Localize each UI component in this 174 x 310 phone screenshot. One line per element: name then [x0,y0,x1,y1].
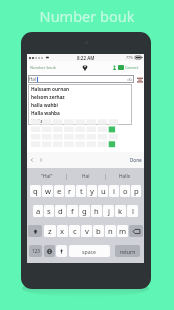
button[interactable]: d [55,205,66,217]
button[interactable]: f [67,205,78,217]
button[interactable]: h [91,205,102,217]
staticText: Hai [82,173,90,180]
button[interactable]: k [115,205,126,217]
button[interactable]: Connect [112,65,139,70]
button[interactable]: n [105,225,116,237]
staticText: j [108,206,110,216]
button[interactable]: space [69,245,110,257]
button[interactable]: Backspace [129,225,143,237]
staticText: v [85,226,89,236]
staticText: g [82,206,87,216]
button[interactable]: Done [130,157,142,163]
staticText: w [45,186,51,196]
button[interactable]: Shift [28,225,42,237]
button[interactable]: s [44,205,54,217]
button[interactable]: o [120,185,130,197]
button[interactable]: x [57,225,68,237]
staticText: a [36,206,41,216]
staticText: Halla wahba [31,110,60,116]
staticText: "Hal" [41,173,53,180]
staticText: p [134,186,139,196]
staticText: i [113,186,115,196]
staticText: l [132,206,134,216]
button[interactable]: Hal [28,75,134,83]
staticText: 123 [32,248,40,254]
staticText: «X» [127,77,133,82]
staticText: f [71,206,74,216]
staticText: Hal [29,76,37,82]
staticText: k [118,206,123,216]
button[interactable]: i [109,185,119,197]
staticText: b [96,226,101,236]
button[interactable]: t [76,185,86,197]
button[interactable]: j [103,205,114,217]
button[interactable]: helsom zerhaz [28,93,132,101]
staticText: return [120,248,136,255]
button[interactable]: return [115,245,140,257]
button[interactable]: z [44,225,56,237]
button[interactable]: Hai [67,168,105,185]
staticText: e [57,186,62,196]
button[interactable]: Next [38,157,44,163]
staticText: t [80,186,83,196]
staticText: helsom zerhaz [31,94,65,100]
staticText: q [33,186,38,196]
staticText: r [68,186,72,196]
staticText: y [90,186,94,196]
button[interactable]: Halla wahba [28,109,132,117]
button[interactable]: u [98,185,108,197]
button[interactable]: q [30,185,41,197]
staticText: m [119,226,127,236]
staticText: u [101,186,106,196]
button[interactable]: Dictate [56,245,67,257]
button[interactable]: e [54,185,64,197]
button[interactable]: b [93,225,104,237]
button[interactable]: Numbers [29,245,42,257]
staticText: Connect [125,65,139,70]
staticText: x [60,226,65,236]
button[interactable]: l [127,205,138,217]
staticText: z [48,226,52,236]
staticText: Number bouk [0,6,174,26]
button[interactable]: Location [80,63,90,73]
button[interactable]: Change language [44,245,55,257]
button[interactable]: Halssam ournan [28,85,132,93]
button[interactable]: y [87,185,97,197]
staticText: 77% [126,55,134,60]
button[interactable]: w [42,185,53,197]
button[interactable]: Filter [136,76,143,83]
button[interactable]: halla wahbi [28,101,132,109]
staticText: n [108,226,113,236]
staticText: o [123,186,128,196]
staticText: d [58,206,63,216]
staticText: Halssam ournan [31,86,70,92]
button[interactable]: p [131,185,141,197]
button[interactable]: Previous [29,157,35,163]
button[interactable]: Halla [28,117,132,125]
staticText: space [82,248,97,255]
staticText: Done [130,157,142,163]
staticText: s [47,206,51,216]
button[interactable]: a [33,205,43,217]
button[interactable]: m [117,225,128,237]
button[interactable]: g [79,205,90,217]
button[interactable]: Halls [106,168,144,185]
staticText: 8:22 AM [77,55,95,61]
button[interactable]: "Hal" [27,168,66,185]
staticText: Number bouk [30,65,56,70]
button[interactable]: r [65,185,75,197]
staticText: c [73,226,77,236]
staticText: Halla [31,118,43,124]
staticText: Halls [119,173,131,180]
button[interactable]: v [81,225,92,237]
button[interactable]: c [69,225,80,237]
staticText: halla wahbi [31,102,58,108]
staticText: h [94,206,99,216]
